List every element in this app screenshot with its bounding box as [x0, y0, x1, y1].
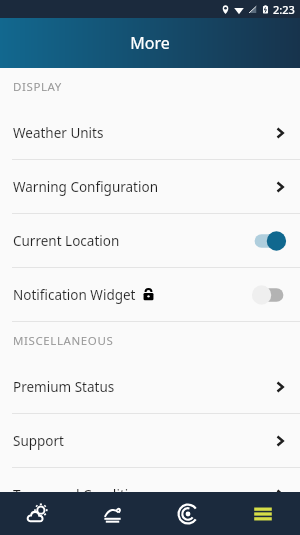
staticText: Warning Configuration: [13, 178, 273, 196]
button[interactable]: [251, 230, 287, 252]
button[interactable]: Support: [0, 414, 300, 467]
staticText: Notification Widget: [13, 286, 136, 304]
staticText: Premium Status: [13, 378, 273, 396]
button[interactable]: Notification Widget: [0, 268, 300, 321]
button[interactable]: Warning Configuration: [0, 160, 300, 213]
button[interactable]: Premium Status: [0, 360, 300, 413]
button[interactable]: Weather Units: [0, 106, 300, 159]
button[interactable]: Radar: [150, 492, 225, 535]
staticText: DISPLAY: [13, 79, 62, 95]
staticText: MISCELLANEOUS: [13, 333, 114, 349]
button[interactable]: Current Location: [0, 214, 300, 267]
button[interactable]: [251, 284, 287, 306]
staticText: Current Location: [13, 232, 120, 250]
button[interactable]: Terms and Conditions: [0, 468, 300, 521]
button[interactable]: More: [225, 492, 300, 535]
staticText: Terms and Conditions: [13, 486, 273, 504]
staticText: More: [130, 32, 170, 54]
button[interactable]: Wind: [75, 492, 150, 535]
staticText: Weather Units: [13, 124, 273, 142]
staticText: Support: [13, 432, 273, 450]
staticText: 2:23: [273, 2, 295, 17]
button[interactable]: Forecast: [0, 492, 75, 535]
